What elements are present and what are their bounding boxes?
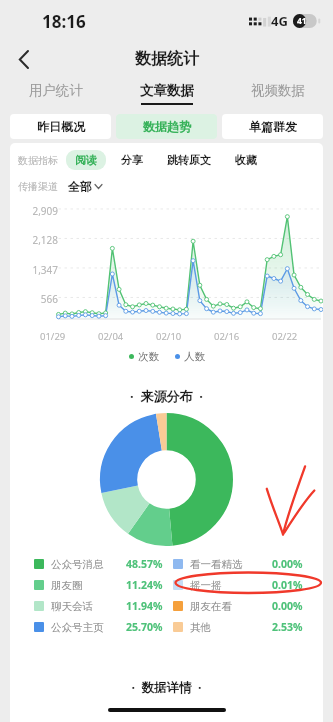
button[interactable]: 看一看精选 bbox=[173, 557, 303, 571]
staticText: 1,347 bbox=[16, 263, 58, 277]
staticText: 用户统计 bbox=[29, 82, 83, 99]
button[interactable]: 聊天会话 bbox=[34, 599, 163, 613]
staticText: 收藏 bbox=[235, 153, 257, 167]
staticText: 02/04 bbox=[98, 330, 124, 343]
button[interactable]: 数据趋势 bbox=[116, 114, 217, 139]
button[interactable]: 文章数据 bbox=[111, 76, 222, 110]
staticText: 朋友圈 bbox=[51, 579, 126, 592]
button[interactable]: · 数据详情 · bbox=[10, 679, 323, 722]
button[interactable]: 昨日概况 bbox=[10, 114, 111, 139]
staticText: 02/10 bbox=[156, 330, 182, 343]
staticText: 25.70% bbox=[126, 620, 163, 634]
button[interactable]: 分享 bbox=[121, 153, 143, 167]
button[interactable]: 单篇群发 bbox=[222, 114, 323, 139]
staticText: 0.00% bbox=[272, 599, 303, 613]
staticText: 跳转原文 bbox=[167, 153, 211, 167]
staticText: 次数 bbox=[138, 350, 159, 363]
staticText: 02/22 bbox=[272, 330, 298, 343]
staticText: 数据统计 bbox=[135, 49, 199, 69]
staticText: 昨日概况 bbox=[37, 119, 85, 134]
button[interactable]: 摇一摇 bbox=[173, 578, 303, 592]
button[interactable]: 收藏 bbox=[235, 153, 257, 167]
staticText: 摇一摇 bbox=[190, 579, 272, 592]
staticText: 阅读 bbox=[75, 153, 97, 167]
staticText: 看一看精选 bbox=[190, 558, 272, 571]
staticText: 02/16 bbox=[214, 330, 240, 343]
staticText: 公众号消息 bbox=[51, 558, 126, 571]
staticText: 11.24% bbox=[126, 578, 163, 592]
staticText: 聊天会话 bbox=[51, 600, 126, 613]
staticText: 数据趋势 bbox=[143, 119, 191, 134]
button[interactable]: 跳转原文 bbox=[167, 153, 211, 167]
staticText: 数据指标 bbox=[18, 154, 58, 167]
staticText: 4G bbox=[271, 12, 288, 30]
button[interactable]: 公众号主页 bbox=[34, 620, 163, 634]
staticText: 2,909 bbox=[16, 204, 58, 218]
staticText: 人数 bbox=[184, 350, 205, 363]
button[interactable]: 全部 bbox=[68, 179, 102, 194]
staticText: 2,128 bbox=[16, 233, 58, 247]
staticText: 公众号主页 bbox=[51, 621, 126, 634]
staticText: · 来源分布 · bbox=[10, 387, 323, 405]
staticText: 18:16 bbox=[42, 10, 86, 33]
staticText: 全部 bbox=[68, 179, 92, 194]
button[interactable]: Back bbox=[6, 42, 40, 76]
button[interactable]: 视频数据 bbox=[222, 76, 333, 110]
staticText: 11.94% bbox=[126, 599, 163, 613]
button[interactable]: 用户统计 bbox=[0, 76, 111, 110]
button[interactable]: 其他 bbox=[173, 620, 303, 634]
staticText: 48.57% bbox=[126, 557, 163, 571]
staticText: 视频数据 bbox=[251, 82, 305, 99]
staticText: 其他 bbox=[190, 621, 272, 634]
staticText: 41 bbox=[297, 15, 307, 27]
staticText: 0.01% bbox=[272, 578, 303, 592]
button[interactable]: 朋友圈 bbox=[34, 578, 163, 592]
staticText: 朋友在看 bbox=[190, 600, 272, 613]
button[interactable]: 阅读 bbox=[75, 153, 97, 167]
staticText: 01/29 bbox=[40, 330, 66, 343]
staticText: 文章数据 bbox=[140, 82, 194, 99]
staticText: 2.53% bbox=[272, 620, 303, 634]
button[interactable]: 朋友在看 bbox=[173, 599, 303, 613]
staticText: 传播渠道 bbox=[18, 180, 58, 193]
button[interactable]: 公众号消息 bbox=[34, 557, 163, 571]
staticText: 0.00% bbox=[272, 557, 303, 571]
staticText: 单篇群发 bbox=[249, 119, 297, 134]
staticText: 566 bbox=[16, 292, 58, 306]
staticText: 分享 bbox=[121, 153, 143, 167]
